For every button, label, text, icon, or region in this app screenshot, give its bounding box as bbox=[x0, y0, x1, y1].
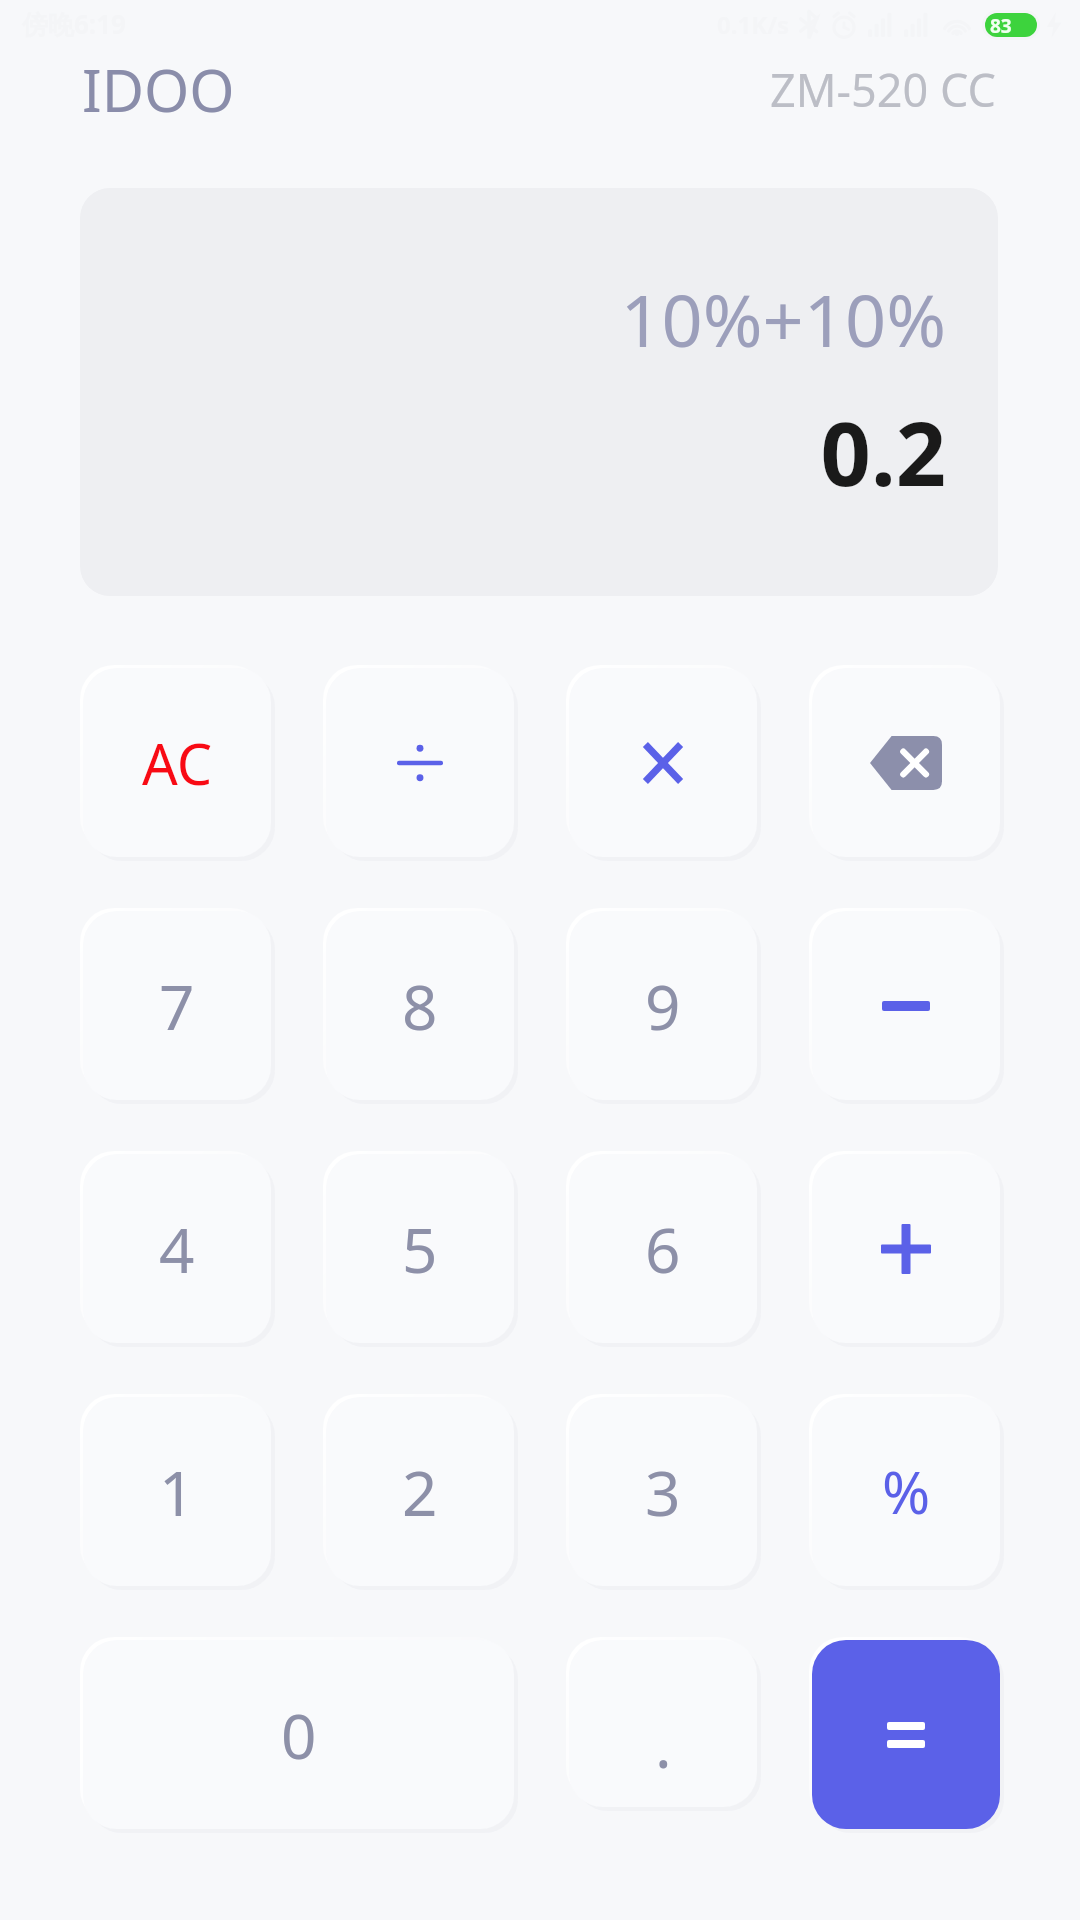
staticText: . bbox=[655, 1702, 672, 1786]
button[interactable]: 1 bbox=[80, 1394, 275, 1590]
button[interactable]: 8 bbox=[323, 908, 518, 1104]
staticText: 83 bbox=[990, 13, 1012, 37]
staticText: 8 bbox=[402, 964, 438, 1048]
button[interactable]: 3 bbox=[566, 1394, 761, 1590]
button[interactable]: Decimal point bbox=[566, 1637, 761, 1811]
staticText: 0 bbox=[281, 1693, 317, 1777]
staticText: 5 bbox=[402, 1207, 438, 1291]
button[interactable]: Backspace bbox=[809, 665, 1004, 861]
staticText: % bbox=[882, 1452, 931, 1531]
staticText: 9 bbox=[645, 964, 681, 1048]
button[interactable]: 9 bbox=[566, 908, 761, 1104]
button[interactable]: Equals bbox=[809, 1637, 1004, 1833]
button[interactable]: Plus bbox=[809, 1151, 1004, 1347]
staticText: 4 bbox=[159, 1207, 195, 1291]
staticText: IDOO bbox=[82, 50, 235, 129]
staticText: 7 bbox=[159, 964, 195, 1048]
button[interactable]: Minus bbox=[809, 908, 1004, 1104]
button[interactable]: AC bbox=[80, 665, 275, 861]
staticText: 1 bbox=[159, 1450, 195, 1534]
button[interactable]: 5 bbox=[323, 1151, 518, 1347]
button[interactable]: 7 bbox=[80, 908, 275, 1104]
staticText: 0.2 bbox=[820, 392, 946, 512]
button[interactable]: Divide bbox=[323, 665, 518, 861]
button[interactable]: 4 bbox=[80, 1151, 275, 1347]
staticText: AC bbox=[142, 725, 213, 801]
button[interactable]: 2 bbox=[323, 1394, 518, 1590]
staticText: 2 bbox=[402, 1450, 438, 1534]
button[interactable]: 6 bbox=[566, 1151, 761, 1347]
staticText: 10%+10% bbox=[620, 270, 946, 368]
staticText: ZM-520 CC bbox=[770, 59, 996, 120]
button[interactable]: 0 bbox=[80, 1637, 518, 1833]
button[interactable]: Multiply bbox=[566, 665, 761, 861]
staticText: 6 bbox=[645, 1207, 681, 1291]
button[interactable]: % bbox=[809, 1394, 1004, 1590]
staticText: 3 bbox=[645, 1450, 681, 1534]
